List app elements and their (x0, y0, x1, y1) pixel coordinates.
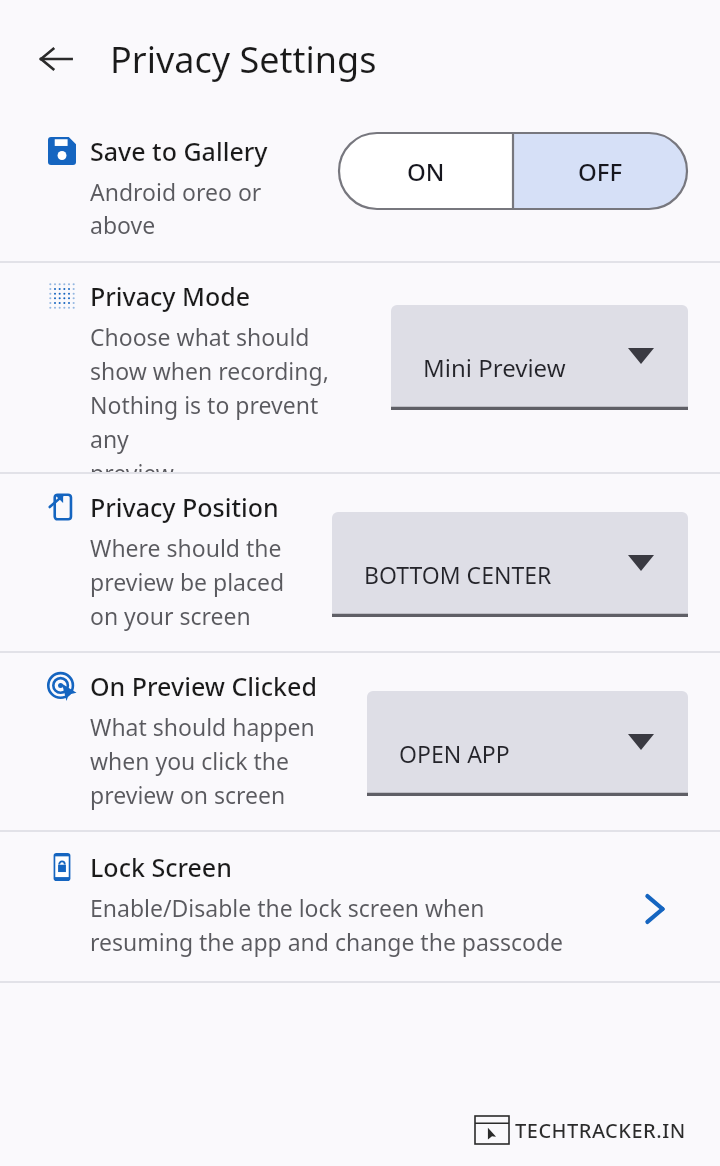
staticText: Mini Preview (423, 351, 566, 384)
staticText: ON (407, 155, 445, 188)
button[interactable]: Privacy Mode (0, 263, 720, 472)
button[interactable]: ON (339, 133, 513, 209)
button[interactable]: BOTTOM CENTER (332, 512, 688, 617)
staticText: Privacy Mode (90, 279, 251, 313)
staticText: What should happen when you click the pr… (90, 711, 315, 810)
staticText: OFF (578, 155, 623, 188)
staticText: Choose what should show when recording, … (90, 321, 348, 472)
staticText: BOTTOM CENTER (364, 559, 552, 590)
button[interactable]: Lock Screen (0, 832, 720, 981)
staticText: On Preview Clicked (90, 669, 317, 703)
staticText: Android oreo or above (90, 176, 318, 241)
staticText: TECHTRACKER.IN (515, 1117, 686, 1144)
staticText: Enable/Disable the lock screen when resu… (90, 892, 563, 957)
staticText: Save to Gallery (90, 134, 268, 168)
button[interactable]: Back (24, 27, 88, 91)
staticText: OPEN APP (399, 738, 510, 769)
button[interactable]: Save to Gallery (0, 118, 720, 261)
button[interactable]: OFF (513, 133, 687, 209)
staticText: Lock Screen (90, 850, 232, 884)
button[interactable]: Mini Preview (391, 305, 688, 410)
button[interactable]: Privacy Position (0, 474, 720, 651)
button[interactable]: On Preview Clicked (0, 653, 720, 830)
staticText: Where should the preview be placed on yo… (90, 532, 285, 631)
button[interactable]: Open lock screen settings (624, 878, 686, 940)
staticText: Privacy Settings (110, 35, 377, 84)
staticText: Privacy Position (90, 490, 279, 524)
button[interactable]: OPEN APP (367, 691, 688, 796)
